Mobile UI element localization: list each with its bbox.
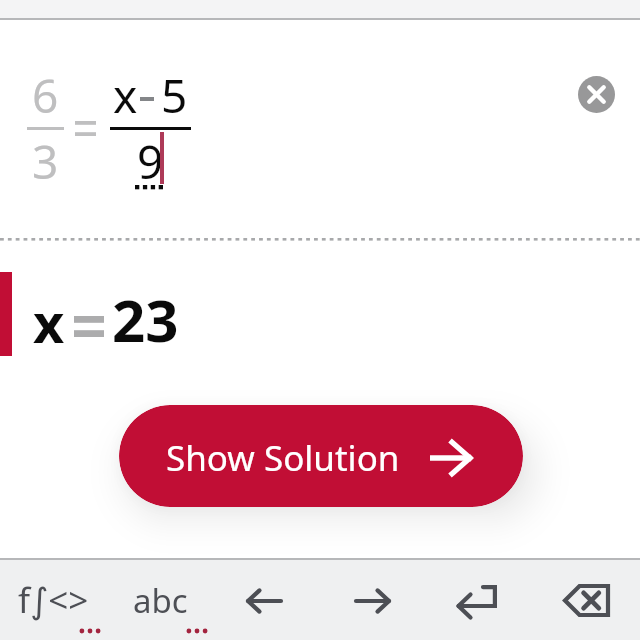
button[interactable]: Clear equation [578,76,615,113]
button[interactable]: Backspace [548,560,624,640]
staticText: f∫<> [18,576,89,624]
button[interactable]: Move cursor left [230,560,298,640]
staticText: x [113,64,138,127]
staticText: 9 [137,130,164,193]
button[interactable]: Enter [442,560,512,640]
staticText: abc [133,578,188,623]
staticText: 6 [32,64,59,127]
button[interactable]: Move cursor right [338,560,406,640]
staticText: 23 [112,280,179,359]
staticText: 3 [32,130,59,193]
button[interactable]: f∫<> [2,560,104,640]
staticText: 5 [161,64,188,127]
button[interactable]: abc [115,560,211,640]
staticText: x [33,285,65,359]
staticText: Show Solution [166,434,400,482]
button[interactable]: Show Solution [119,405,523,507]
button[interactable]: x [0,272,640,356]
